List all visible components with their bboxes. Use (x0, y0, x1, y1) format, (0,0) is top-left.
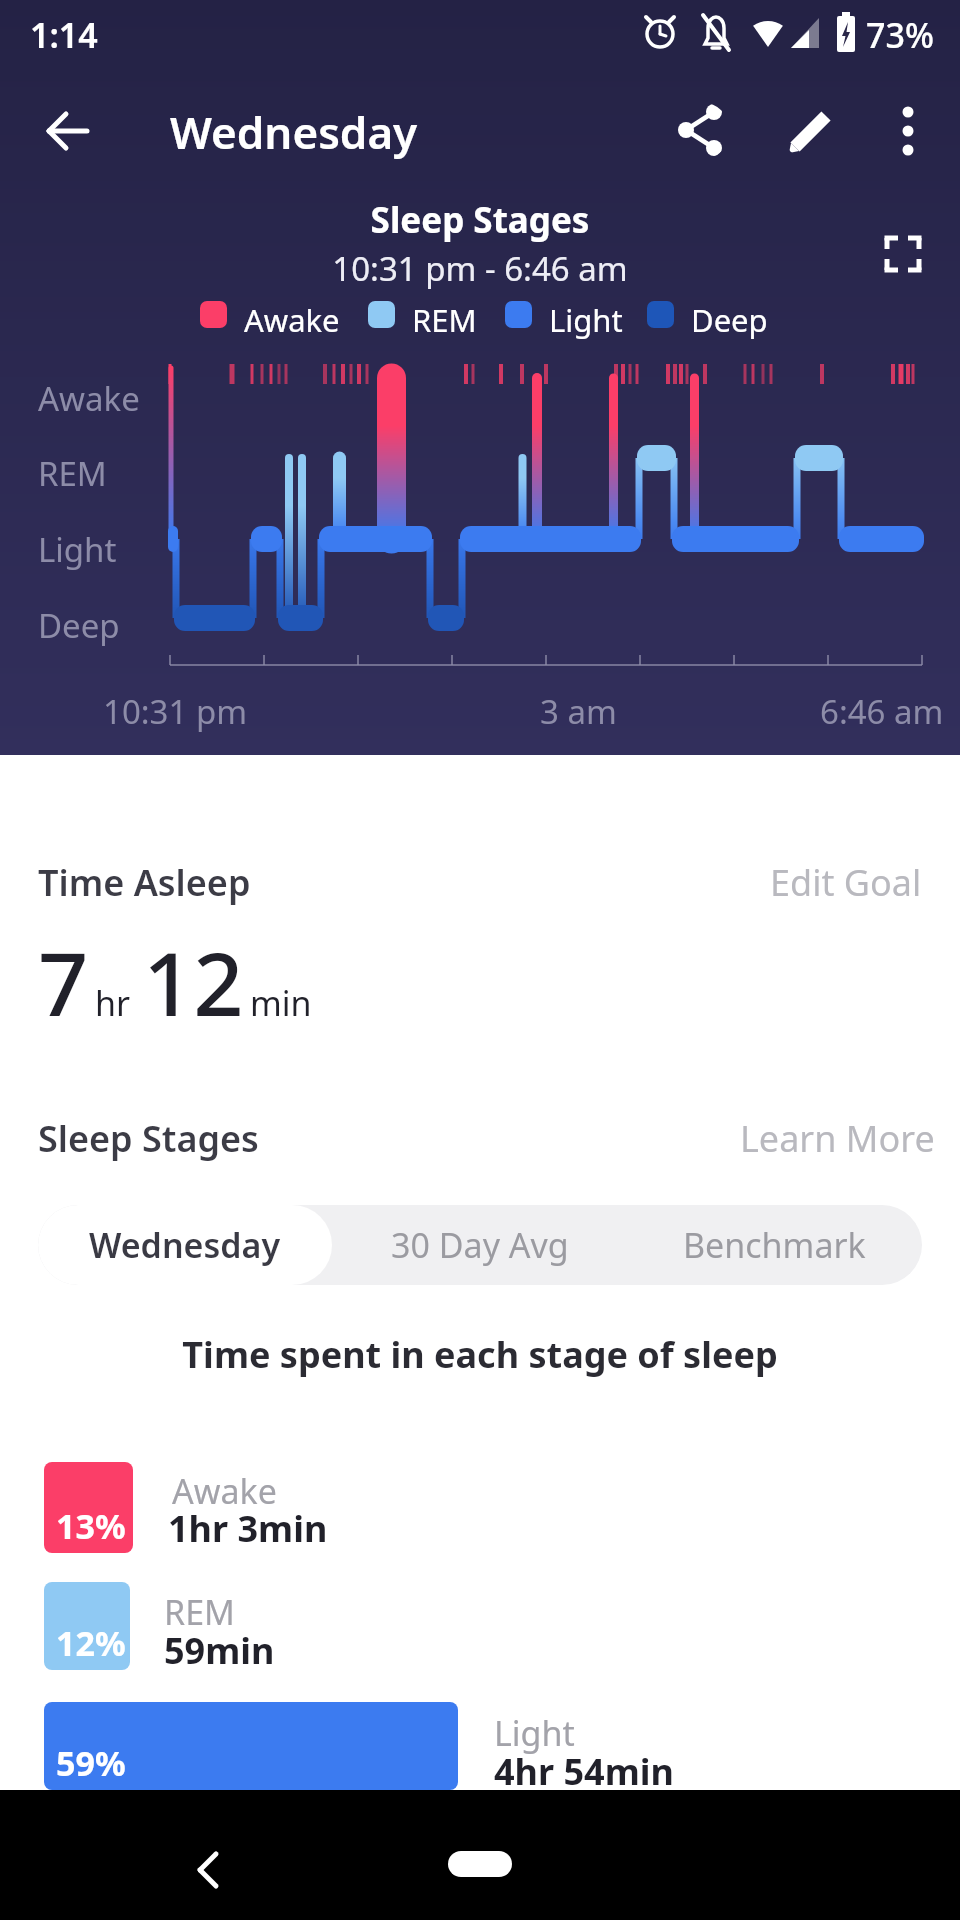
staticText: Sleep Stages (38, 1114, 259, 1163)
staticText: 12 (143, 922, 244, 1042)
staticText: Time Asleep (38, 858, 251, 907)
staticText: Deep (691, 299, 768, 341)
staticText: Time spent in each stage of sleep (0, 1330, 960, 1379)
staticText: 13% (56, 1503, 126, 1549)
staticText: Edit Goal (770, 858, 922, 907)
staticText: Learn More (740, 1114, 935, 1163)
staticText: Wednesday (170, 102, 418, 162)
staticText: 1hr 3min (168, 1504, 328, 1553)
staticText: 3 am (540, 689, 617, 734)
button[interactable]: Benchmark (627, 1205, 922, 1285)
button[interactable] (175, 1838, 239, 1902)
staticText: Wednesday (89, 1222, 281, 1268)
staticText: Benchmark (683, 1222, 866, 1268)
staticText: Awake (244, 299, 340, 341)
staticText: min (250, 980, 312, 1026)
staticText: 59% (56, 1740, 126, 1786)
button[interactable] (448, 1851, 512, 1877)
button[interactable] (880, 102, 936, 158)
staticText: 7 (38, 922, 89, 1042)
staticText: 1:14 (30, 12, 98, 58)
staticText: 10:31 pm - 6:46 am (0, 246, 960, 291)
staticText: Light (38, 527, 117, 572)
staticText: 73% (866, 12, 934, 58)
staticText: 30 Day Avg (391, 1222, 569, 1268)
staticText: Awake (38, 376, 140, 421)
staticText: 4hr 54min (494, 1747, 674, 1796)
button[interactable] (875, 226, 931, 282)
button[interactable] (35, 100, 97, 162)
staticText: 6:46 am (820, 689, 944, 734)
staticText: Light (549, 299, 623, 341)
staticText: 59min (164, 1626, 275, 1675)
staticText: Deep (38, 603, 120, 648)
staticText: REM (38, 451, 107, 496)
staticText: REM (164, 1589, 235, 1635)
button[interactable]: Learn More (730, 1104, 945, 1173)
staticText: hr (95, 980, 131, 1026)
button[interactable]: 30 Day Avg (332, 1205, 627, 1285)
button[interactable]: Edit Goal (760, 848, 932, 917)
staticText: 10:31 pm (103, 689, 248, 734)
button[interactable]: Wednesday (38, 1205, 332, 1285)
button[interactable] (782, 102, 840, 160)
staticText: Awake (172, 1468, 277, 1514)
staticText: Sleep Stages (0, 196, 960, 244)
staticText: REM (412, 299, 477, 341)
button[interactable] (672, 102, 730, 160)
staticText: 12% (56, 1620, 126, 1666)
staticText: Light (494, 1710, 575, 1756)
